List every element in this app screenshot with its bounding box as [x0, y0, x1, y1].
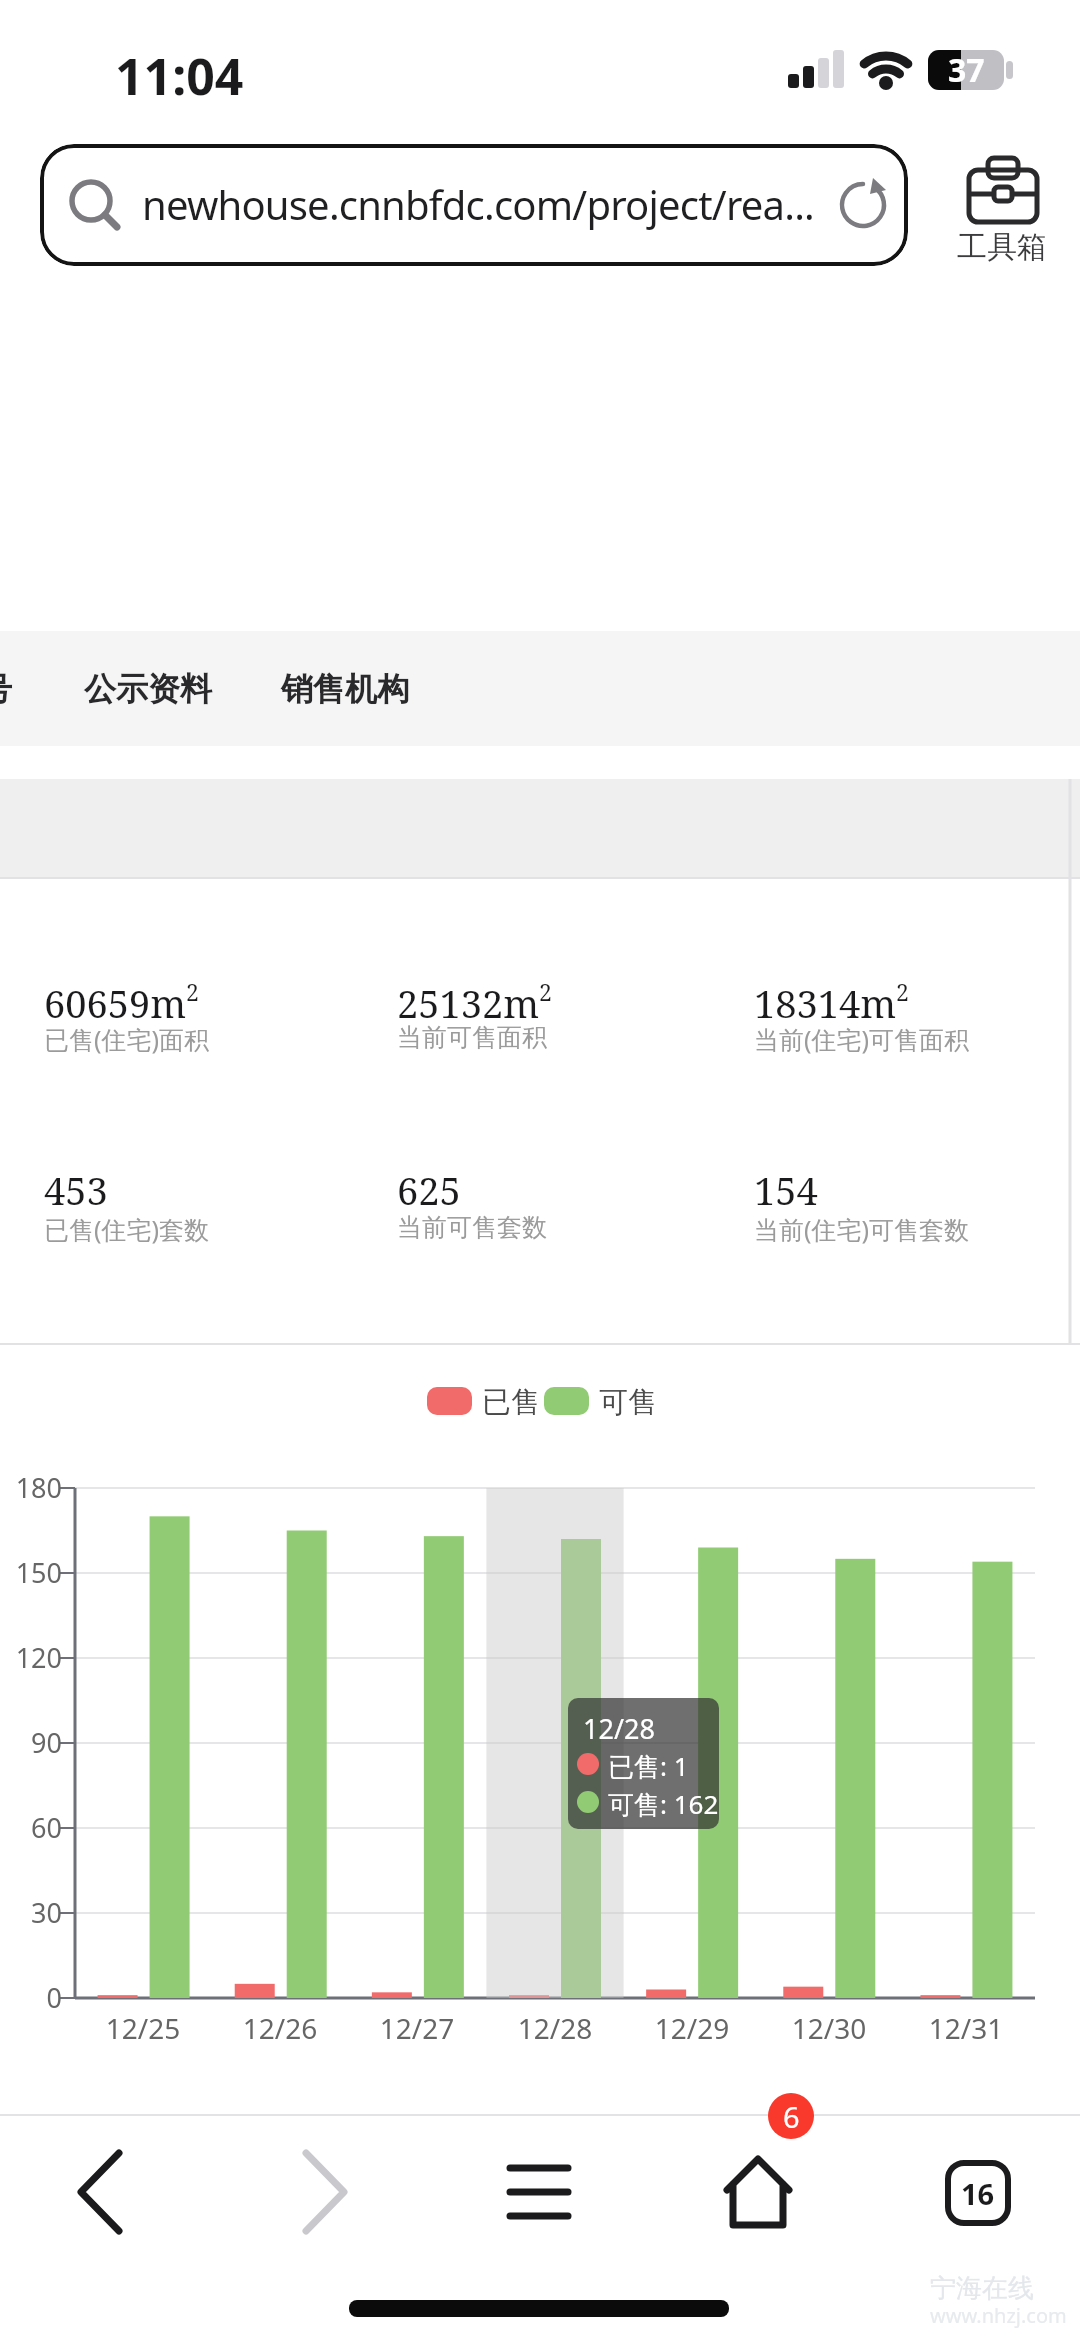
staticText: 当前(住宅)可售面积	[754, 1022, 970, 1056]
staticText: 60659m2	[44, 976, 199, 1029]
staticText: 公示资料	[84, 669, 212, 709]
staticText: 12/27	[357, 2009, 477, 2047]
button[interactable]	[705, 2140, 815, 2250]
staticText: 0	[0, 1979, 62, 2016]
staticText: 30	[0, 1894, 62, 1931]
staticText: 可售: 162	[608, 1786, 719, 1822]
staticText: 当前(住宅)可售套数	[754, 1212, 970, 1246]
staticText: 180	[0, 1469, 62, 1506]
staticText: 90	[0, 1724, 62, 1761]
staticText: 150	[0, 1554, 62, 1591]
staticText: 12/25	[83, 2009, 203, 2047]
staticText: 已售(住宅)面积	[44, 1022, 210, 1056]
staticText: 60	[0, 1809, 62, 1846]
button[interactable]	[925, 2140, 1035, 2250]
staticText: 12/28	[495, 2009, 615, 2047]
button[interactable]: 工具箱	[945, 148, 1065, 273]
staticText: 12/28	[583, 1710, 655, 1747]
staticText: 当前可售套数	[397, 1212, 547, 1243]
staticText: 154	[754, 1164, 818, 1216]
button[interactable]: 可售	[544, 1380, 669, 1422]
button[interactable]	[485, 2140, 595, 2250]
staticText: 工具箱	[957, 228, 1047, 266]
staticText: 12/31	[906, 2009, 1026, 2047]
staticText: 已售: 1	[608, 1748, 689, 1784]
staticText: 12/30	[769, 2009, 889, 2047]
button[interactable]	[60, 2140, 170, 2250]
staticText: 18314m2	[754, 976, 909, 1029]
staticText: 宁海在线	[930, 2272, 1034, 2305]
staticText: 120	[0, 1639, 62, 1676]
staticText: 11:04	[115, 42, 244, 110]
staticText: 已售	[482, 1384, 540, 1421]
button[interactable]: 公示资料	[84, 631, 212, 746]
staticText: 12/29	[632, 2009, 752, 2047]
staticText: 号	[0, 669, 12, 709]
button[interactable]: 销售机构	[281, 631, 409, 746]
button[interactable]	[285, 2140, 395, 2250]
staticText: 销售机构	[281, 669, 409, 709]
staticText: 已售(住宅)套数	[44, 1212, 210, 1246]
staticText: 453	[44, 1164, 108, 1216]
button[interactable]: newhouse.cnnbfdc.com/project/rea...	[40, 144, 908, 266]
staticText: 当前可售面积	[397, 1022, 547, 1053]
button[interactable]: 已售	[427, 1380, 552, 1422]
staticText: newhouse.cnnbfdc.com/project/rea...	[142, 177, 814, 231]
staticText: 12/26	[220, 2009, 340, 2047]
staticText: 37	[948, 48, 985, 90]
staticText: 6	[783, 2097, 800, 2136]
staticText: 16	[961, 2174, 995, 2213]
staticText: www.nhzj.com	[930, 2302, 1067, 2329]
staticText: 25132m2	[397, 976, 552, 1029]
staticText: 可售	[599, 1384, 657, 1421]
staticText: 625	[397, 1164, 461, 1216]
